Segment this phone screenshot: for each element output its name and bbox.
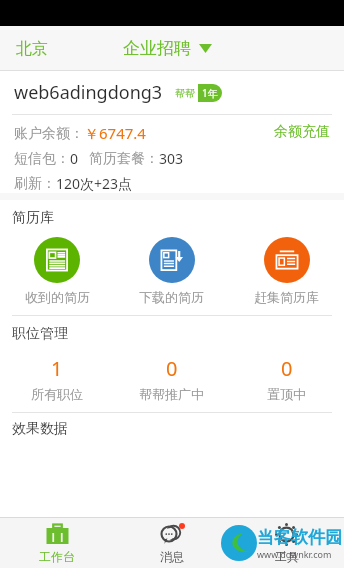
staticText: 120次+23点 [56,174,133,193]
button[interactable]: 工具 [229,517,344,568]
button[interactable]: 下载的简历 [114,235,229,307]
button[interactable]: web6adingdong3 [0,71,344,114]
button[interactable]: 余额充值 [268,119,336,145]
staticText: www.downkr.com [257,548,332,560]
staticText: 0 [70,149,79,168]
button[interactable]: 0 [114,353,229,404]
staticText: 账户余额： [14,125,84,143]
staticText: 简历套餐： [89,150,159,168]
staticText: 所有职位 [31,386,83,402]
button[interactable]: 1 [0,353,114,404]
staticText: 工作台 [39,549,75,564]
button[interactable]: 赶集简历库 [229,235,344,307]
button[interactable]: 0 [229,353,344,404]
staticText: 帮帮 [175,87,195,100]
staticText: 当客软件园 [257,527,342,548]
staticText: 1年 [202,86,218,100]
staticText: 消息 [160,549,184,564]
staticText: 北京 [16,39,48,59]
staticText: 赶集简历库 [254,289,319,305]
staticText: 效果数据 [12,420,68,438]
button[interactable]: 北京 [14,35,50,63]
button[interactable]: 消息 [114,517,229,568]
staticText: 收到的简历 [25,289,90,305]
staticText: 短信包： [14,150,70,168]
button[interactable]: 工作台 [0,517,114,568]
staticText: 职位管理 [12,325,68,343]
button[interactable]: 收到的简历 [0,235,114,307]
staticText: ￥6747.4 [84,123,146,143]
staticText: 置顶中 [267,386,306,402]
staticText: 简历库 [12,209,54,227]
button[interactable]: 企业招聘 [119,34,216,63]
staticText: 下载的简历 [139,289,204,305]
staticText: web6adingdong3 [14,80,163,105]
staticText: 刷新： [14,175,56,193]
staticText: 303 [159,149,184,168]
staticText: 帮帮推广中 [139,386,204,402]
staticText: 企业招聘 [123,38,191,59]
staticText: 1 [51,355,63,382]
staticText: 余额充值 [274,123,330,141]
staticText: 0 [166,355,178,382]
staticText: 工具 [275,549,299,564]
staticText: 0 [281,355,293,382]
